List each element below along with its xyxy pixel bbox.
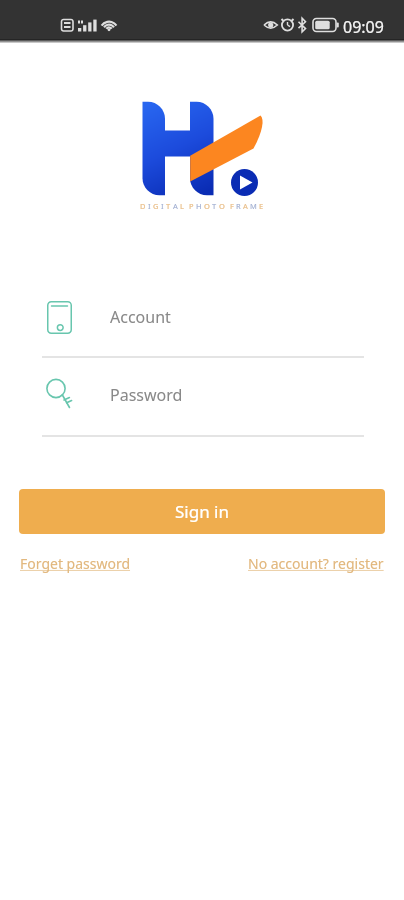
staticText: O	[204, 201, 210, 211]
staticText: F	[230, 201, 234, 211]
button[interactable]: No account? register	[248, 551, 384, 576]
staticText: 09:09	[343, 16, 384, 38]
other: Account	[47, 301, 72, 334]
button[interactable]: Password	[0, 366, 404, 424]
staticText: E	[259, 201, 264, 211]
staticText: L	[180, 201, 184, 211]
staticText: A	[173, 201, 178, 211]
staticText: H	[196, 201, 202, 211]
staticText: No account? register	[248, 554, 384, 573]
staticText: O	[219, 201, 225, 211]
button[interactable]: Forget password	[20, 551, 131, 576]
staticText: A	[243, 201, 248, 211]
staticText: M	[250, 201, 257, 211]
staticText: I	[148, 201, 151, 211]
staticText: P	[189, 201, 194, 211]
staticText: T	[166, 201, 171, 211]
staticText: Password	[110, 384, 183, 406]
staticText: R	[236, 201, 241, 211]
staticText: Sign in	[175, 500, 229, 523]
button[interactable]: Account	[0, 288, 404, 346]
staticText: Account	[110, 306, 171, 328]
staticText: G	[153, 201, 159, 211]
staticText: D	[140, 201, 146, 211]
staticText: T	[212, 201, 217, 211]
staticText: I	[161, 201, 164, 211]
other: Password	[46, 378, 72, 412]
button[interactable]: Sign in	[19, 489, 385, 534]
staticText: Forget password	[20, 554, 131, 573]
